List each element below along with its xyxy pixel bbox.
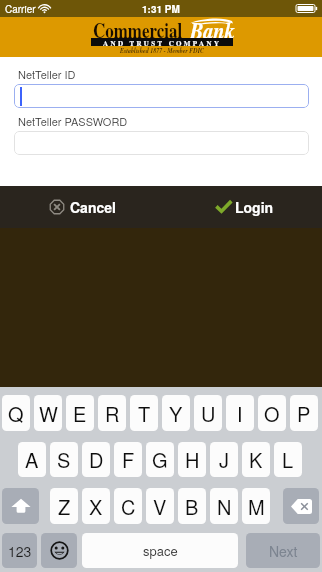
button[interactable]: P [290, 395, 318, 431]
button[interactable]: Emoji keyboard [41, 533, 77, 568]
staticText: R [105, 399, 120, 428]
staticText: Q [8, 399, 24, 428]
button[interactable]: B [178, 488, 206, 524]
button[interactable]: Shift [2, 488, 39, 524]
staticText: B [185, 492, 199, 521]
button[interactable]: Login [215, 197, 274, 217]
button[interactable]: C [114, 488, 142, 524]
button[interactable]: 123 [2, 533, 37, 568]
button[interactable]: K [242, 442, 270, 477]
button[interactable] [14, 84, 309, 108]
button[interactable]: space [82, 533, 238, 568]
staticText: P [297, 399, 311, 428]
button[interactable]: I [226, 395, 254, 431]
staticText: 1:31 PM [142, 2, 180, 16]
staticText: NetTeller PASSWORD [18, 113, 128, 129]
staticText: A [25, 445, 39, 474]
staticText: G [152, 445, 168, 474]
button[interactable] [14, 131, 309, 155]
staticText: Login [235, 197, 274, 217]
button[interactable]: S [50, 442, 78, 477]
button[interactable]: L [274, 442, 302, 477]
staticText: W [39, 399, 58, 428]
staticText: Z [58, 492, 71, 521]
button[interactable]: W [34, 395, 62, 431]
button[interactable]: F [114, 442, 142, 477]
staticText: T [138, 399, 151, 428]
staticText: Carrier [5, 2, 36, 16]
staticText: Next [269, 541, 298, 561]
staticText: Bank [190, 13, 235, 47]
staticText: X [89, 492, 103, 521]
button[interactable]: R [98, 395, 126, 431]
button[interactable]: G [146, 442, 174, 477]
staticText: U [201, 399, 216, 428]
button[interactable]: Q [2, 395, 30, 431]
button[interactable]: H [178, 442, 206, 477]
button[interactable]: N [210, 488, 238, 524]
staticText: K [249, 445, 263, 474]
button[interactable]: Backspace [283, 488, 319, 524]
staticText: D [89, 445, 104, 474]
button[interactable]: E [66, 395, 94, 431]
button[interactable]: U [194, 395, 222, 431]
staticText: 123 [8, 541, 32, 561]
button[interactable]: Z [50, 488, 78, 524]
button[interactable]: T [130, 395, 158, 431]
staticText: F [122, 445, 135, 474]
staticText: V [153, 492, 167, 521]
staticText: N [217, 492, 232, 521]
staticText: I [237, 399, 243, 428]
staticText: L [282, 445, 294, 474]
staticText: Established 1877 - Member FDIC [120, 47, 205, 55]
staticText: O [264, 399, 280, 428]
button[interactable]: Next [246, 533, 320, 568]
button[interactable]: X [82, 488, 110, 524]
button[interactable]: D [82, 442, 110, 477]
staticText: E [73, 399, 87, 428]
button[interactable]: Cancel [49, 197, 116, 217]
staticText: C [121, 492, 136, 521]
button[interactable]: V [146, 488, 174, 524]
button[interactable]: Y [162, 395, 190, 431]
staticText: J [219, 445, 229, 474]
staticText: S [57, 445, 71, 474]
staticText: M [248, 492, 265, 521]
button[interactable]: A [18, 442, 46, 477]
staticText: Cancel [70, 197, 116, 217]
button[interactable]: M [242, 488, 270, 524]
button[interactable]: J [210, 442, 238, 477]
staticText: AND TRUST COMPANY [103, 38, 222, 46]
staticText: Commercial [93, 13, 182, 45]
staticText: NetTeller ID [18, 66, 76, 82]
staticText: Y [169, 399, 183, 428]
staticText: H [185, 445, 200, 474]
staticText: space [143, 541, 178, 560]
button[interactable]: O [258, 395, 286, 431]
